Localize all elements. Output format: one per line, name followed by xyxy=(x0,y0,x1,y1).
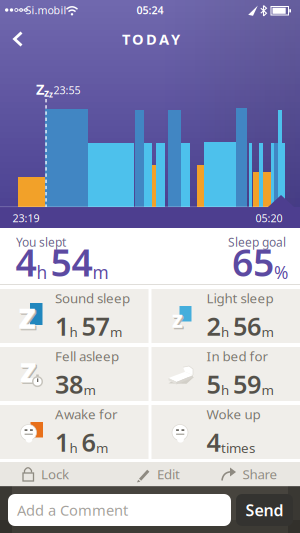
staticText: 56 xyxy=(233,309,261,343)
staticText: 5 xyxy=(206,367,220,401)
staticText: h xyxy=(221,381,229,399)
button[interactable]: Lock xyxy=(21,465,69,483)
staticText: z xyxy=(49,89,53,100)
staticText: Fell asleep xyxy=(55,347,119,365)
staticText: Z xyxy=(173,310,184,333)
staticText: 1 xyxy=(55,425,69,459)
button[interactable]: Z xyxy=(151,289,300,343)
staticText: 59 xyxy=(233,367,261,401)
staticText: You slept xyxy=(16,234,66,250)
button[interactable]: Z xyxy=(0,289,148,343)
staticText: 4 xyxy=(206,425,220,459)
staticText: Share xyxy=(242,465,277,483)
button[interactable]: Send xyxy=(236,494,293,526)
staticText: 4 xyxy=(15,237,36,287)
staticText: Add a Comment xyxy=(17,500,128,520)
staticText: % xyxy=(274,261,288,284)
staticText: 38 xyxy=(55,367,83,401)
staticText: Send xyxy=(245,499,283,521)
staticText: Woke up xyxy=(206,405,260,423)
staticText: 23:55 xyxy=(53,83,80,97)
staticText: m xyxy=(110,323,122,341)
staticText: Z xyxy=(21,356,37,391)
staticText: Z xyxy=(20,301,37,338)
staticText: m xyxy=(96,439,108,457)
staticText: h xyxy=(36,261,47,284)
staticText: Lock xyxy=(41,465,69,483)
staticText: 65 xyxy=(232,237,274,287)
staticText: Z xyxy=(36,79,44,99)
staticText: Z xyxy=(21,355,37,390)
staticText: Z xyxy=(19,300,36,337)
staticText: 23:19 xyxy=(12,211,39,225)
staticText: Sound sleep xyxy=(55,289,130,307)
staticText: times xyxy=(221,439,255,457)
staticText: m xyxy=(83,381,95,399)
staticText: m xyxy=(261,323,273,341)
staticText: 05:20 xyxy=(255,211,282,225)
staticText: h xyxy=(69,439,77,457)
staticText: Z xyxy=(20,354,36,390)
staticText: h xyxy=(221,323,229,341)
button[interactable]: Share xyxy=(220,465,277,483)
staticText: Si.mobil xyxy=(25,3,66,17)
button[interactable]: Z xyxy=(0,347,148,401)
button[interactable]: Woke up xyxy=(151,405,300,459)
staticText: h xyxy=(69,323,77,341)
staticText: m xyxy=(261,381,273,399)
button[interactable]: In bed for xyxy=(151,347,300,401)
staticText: 54 xyxy=(50,237,92,287)
staticText: T O D A Y xyxy=(122,29,180,49)
staticText: Light sleep xyxy=(206,289,273,307)
staticText: 05:24 xyxy=(136,3,163,17)
button[interactable]: Awake for xyxy=(0,405,148,459)
staticText: Z xyxy=(173,311,184,334)
staticText: 57 xyxy=(81,309,109,343)
button[interactable]: Add a Comment xyxy=(8,494,231,526)
staticText: 6 xyxy=(81,425,95,459)
staticText: Awake for xyxy=(55,405,118,423)
staticText: Sleep goal xyxy=(228,234,286,250)
staticText: In bed for xyxy=(206,347,268,365)
button[interactable] xyxy=(2,24,32,54)
staticText: Edit xyxy=(157,465,180,483)
staticText: 2 xyxy=(206,309,220,343)
staticText: Z xyxy=(172,309,183,332)
staticText: Z xyxy=(18,299,35,337)
staticText xyxy=(47,269,50,287)
staticText: z xyxy=(44,85,49,100)
staticText: 1 xyxy=(55,309,69,343)
button[interactable]: Edit xyxy=(136,465,180,483)
staticText: m xyxy=(92,261,108,284)
